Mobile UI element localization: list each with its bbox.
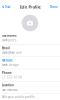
staticText: Edit Profile [19, 4, 40, 10]
staticText: Location [2, 84, 14, 87]
staticText: sarah@mail.com [2, 51, 21, 54]
staticText: Back [5, 5, 10, 9]
button[interactable]: Username [0, 32, 60, 44]
staticText: Website [2, 59, 13, 62]
button[interactable]: Done [50, 5, 60, 9]
button[interactable]: Phone [0, 69, 60, 82]
staticText: +1 555 0134 [2, 76, 22, 79]
button[interactable]: Website [0, 57, 60, 69]
staticText: Email [2, 46, 10, 50]
staticText: Phone [2, 71, 12, 75]
staticText: Done [50, 5, 58, 9]
staticText: sarahjones [2, 38, 16, 42]
button[interactable]: Back [0, 5, 10, 9]
staticText: Edit your public profile [2, 95, 35, 99]
staticText: San Francisco [2, 88, 18, 92]
staticText: Username [2, 34, 17, 37]
staticText: sarah.design [2, 63, 19, 67]
button[interactable]: Location [0, 82, 60, 94]
button[interactable]: Email [0, 44, 60, 57]
